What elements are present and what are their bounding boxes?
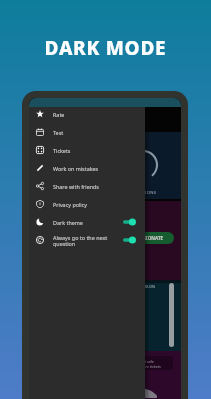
staticText: Always go to the next question [53,234,123,247]
staticText: DARK MODE [0,35,211,61]
staticText: More tickets [140,364,161,369]
button[interactable]: Test [29,123,145,141]
staticText: Get safe [140,359,154,364]
staticText: Privacy policy [53,201,145,208]
staticText: 100.0% [141,284,156,290]
button[interactable]: Privacy policy [29,195,145,213]
button[interactable]: Always go to the next question [29,231,145,249]
staticText: Tickets [53,147,145,154]
staticText: PASSIONATE [135,235,164,241]
button[interactable]: Rate [29,105,145,123]
staticText: Rate [53,111,145,118]
staticText: Work on mistakes [53,165,145,172]
button[interactable]: Dark theme [29,213,145,231]
button[interactable]: PASSIONATE [125,232,174,244]
staticText: Dark theme [53,219,123,226]
staticText: Share with friends [53,183,145,190]
button[interactable]: Work on mistakes [29,159,145,177]
button[interactable]: Share with friends [29,177,145,195]
staticText: Test [53,129,145,136]
button[interactable]: Tickets [29,141,145,159]
staticText: QUESTIONS [130,190,157,196]
